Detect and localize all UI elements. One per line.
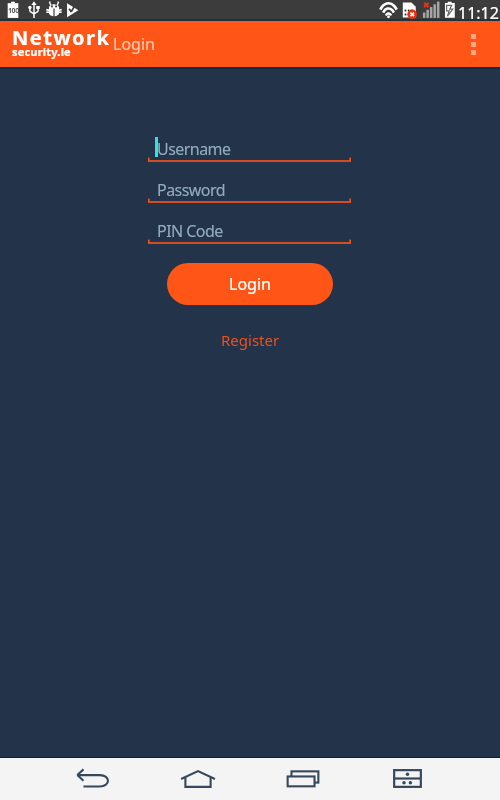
staticText: Register: [221, 330, 280, 350]
staticText: 11:12: [458, 2, 499, 22]
button[interactable]: Multi window: [355, 757, 460, 800]
button[interactable]: Back: [40, 757, 145, 800]
staticText: Network: [12, 24, 111, 51]
button[interactable]: PIN Code: [148, 238, 351, 246]
staticText: 100: [8, 6, 19, 16]
staticText: PIN Code: [157, 220, 223, 240]
button[interactable]: Register: [211, 327, 290, 353]
staticText: Password: [157, 179, 225, 199]
button[interactable]: Username: [148, 156, 351, 164]
staticText: Username: [157, 138, 231, 158]
staticText: security.ie: [12, 44, 71, 59]
button[interactable]: More options: [451, 21, 495, 68]
button[interactable]: Password: [148, 197, 351, 205]
staticText: Login: [113, 33, 155, 55]
button[interactable]: Login: [167, 263, 333, 305]
staticText: Login: [229, 273, 271, 295]
button[interactable]: Recent apps: [250, 757, 355, 800]
button[interactable]: Home: [145, 757, 250, 800]
